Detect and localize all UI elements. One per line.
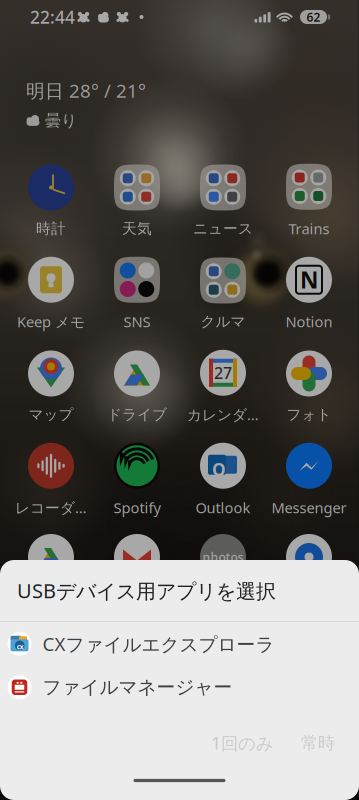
staticText: Messenger: [271, 498, 346, 517]
button[interactable]: Settings: [266, 534, 352, 580]
staticText: 天気: [122, 219, 152, 237]
staticText: 常時: [301, 732, 335, 754]
button[interactable]: フォト: [266, 350, 352, 424]
staticText: Trains: [288, 219, 329, 238]
button[interactable]: ファイルマネージャー: [0, 665, 359, 709]
button[interactable]: クルマ: [180, 257, 266, 331]
staticText: フォト: [286, 405, 331, 423]
button[interactable]: 時計: [8, 164, 94, 238]
button[interactable]: マップ: [8, 350, 94, 424]
staticText: ドライブ: [107, 405, 167, 423]
staticText: cx: [17, 642, 24, 651]
staticText: 22:44: [30, 5, 75, 28]
button[interactable]: N: [266, 257, 352, 331]
staticText: 62: [306, 9, 320, 25]
staticText: 曇り: [45, 111, 77, 130]
button[interactable]: 常時: [292, 725, 344, 761]
button[interactable]: 明日 28° / 21°: [0, 78, 359, 130]
staticText: 明日 28° / 21°: [26, 78, 146, 103]
staticText: O: [212, 458, 226, 481]
button[interactable]: 27: [180, 350, 266, 424]
staticText: Outlook: [195, 498, 250, 517]
button[interactable]: ドライブ: [94, 350, 180, 424]
button[interactable]: レコーダ…: [8, 443, 94, 517]
button[interactable]: O: [180, 443, 266, 517]
staticText: SNS: [123, 312, 150, 331]
button[interactable]: 1回のみ: [202, 725, 283, 761]
staticText: 27: [214, 362, 232, 383]
staticText: ニュース: [193, 219, 253, 237]
staticText: Spotify: [113, 498, 160, 517]
button[interactable]: SNS: [94, 257, 180, 331]
staticText: Keep メモ: [17, 312, 85, 331]
button[interactable]: Messenger: [266, 443, 352, 517]
staticText: 時計: [36, 219, 66, 237]
button[interactable]: Drive: [8, 534, 94, 580]
staticText: レコーダ…: [15, 498, 87, 517]
button[interactable]: cx: [0, 622, 359, 665]
staticText: マップ: [28, 405, 73, 423]
staticText: カレンダ…: [187, 405, 259, 424]
button[interactable]: Photos: [180, 534, 266, 580]
button[interactable]: ニュース: [180, 164, 266, 238]
button[interactable]: Trains: [266, 164, 352, 238]
staticText: CXファイルエクスプローラ: [42, 631, 274, 656]
staticText: N: [300, 265, 318, 295]
staticText: photos: [202, 549, 243, 565]
button[interactable]: Keep メモ: [8, 257, 94, 331]
button[interactable]: 天気: [94, 164, 180, 238]
staticText: Notion: [285, 312, 332, 331]
staticText: 1回のみ: [211, 731, 274, 754]
button[interactable]: Gmail: [94, 534, 180, 580]
button[interactable]: Spotify: [94, 443, 180, 517]
staticText: ファイルマネージャー: [42, 676, 232, 699]
staticText: USBデバイス用アプリを選択: [17, 577, 276, 604]
staticText: クルマ: [200, 312, 245, 330]
